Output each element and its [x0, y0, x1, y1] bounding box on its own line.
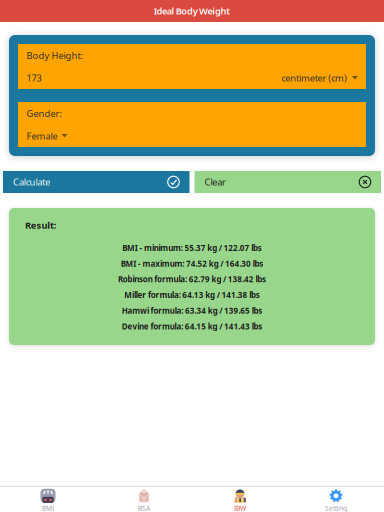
staticText: Ideal Body Weight: [154, 5, 230, 17]
staticText: Female: [26, 130, 57, 142]
staticText: Hamwi formula: 63.34 kg / 139.65 lbs: [122, 305, 262, 316]
staticText: Result:: [25, 219, 57, 231]
staticText: Setting: [325, 504, 347, 512]
staticText: centimeter (cm): [281, 72, 347, 84]
button[interactable]: Setting: [288, 489, 384, 512]
staticText: Calculate: [13, 176, 50, 188]
button[interactable]: Calculate: [3, 171, 189, 193]
staticText: Gender:: [26, 107, 62, 120]
staticText: 173: [26, 72, 41, 84]
button[interactable]: IBW: [192, 489, 288, 512]
staticText: BSA: [138, 504, 150, 512]
staticText: Body Height:: [26, 49, 83, 62]
staticText: Clear: [204, 176, 226, 188]
button[interactable]: Clear: [194, 171, 381, 193]
staticText: BMI: [42, 504, 54, 512]
button[interactable]: BMI: [0, 489, 96, 512]
button[interactable]: BSA: [96, 489, 192, 512]
staticText: BMI - maximum: 74.52 kg / 164.30 lbs: [121, 258, 263, 269]
staticText: Devine formula: 64.15 kg / 141.43 lbs: [122, 321, 262, 332]
staticText: IBW: [234, 504, 246, 512]
staticText: Robinson formula: 62.79 kg / 138.42 lbs: [118, 274, 266, 284]
staticText: BMI - minimum: 55.37 kg / 122.07 lbs: [122, 242, 262, 253]
staticText: Miller formula: 64.13 kg / 141.38 lbs: [124, 290, 260, 300]
